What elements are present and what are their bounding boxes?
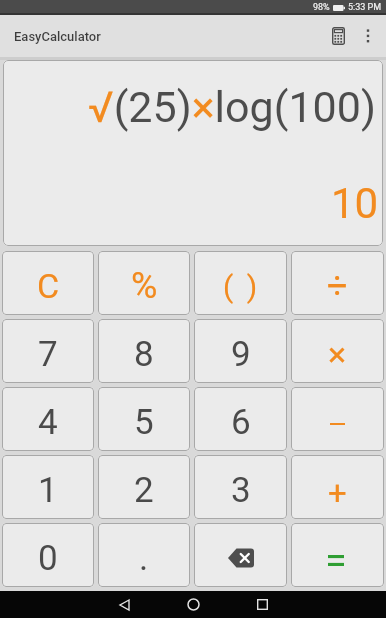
staticText: 3 [231, 470, 251, 511]
button[interactable] [291, 387, 384, 451]
button[interactable] [256, 598, 269, 611]
staticText: √(25)×log(100) [88, 82, 376, 132]
button[interactable]: 3 [194, 455, 287, 519]
button[interactable]: . [98, 523, 190, 587]
button[interactable] [326, 15, 350, 57]
button[interactable]: ( ) [194, 251, 287, 315]
staticText: 5 [134, 402, 154, 443]
staticText: ( ) [223, 269, 258, 304]
staticText: 4 [38, 402, 58, 443]
button[interactable]: 9 [194, 319, 287, 383]
button[interactable]: × [291, 319, 384, 383]
staticText: 7 [38, 334, 58, 375]
button[interactable]: 2 [98, 455, 190, 519]
staticText: 1 [38, 470, 58, 511]
button[interactable]: 4 [2, 387, 94, 451]
button[interactable]: 5 [98, 387, 190, 451]
staticText: 10 [331, 179, 379, 228]
staticText: % [131, 265, 158, 307]
staticText: EasyCalculator [14, 29, 101, 44]
staticText: 8 [134, 334, 154, 375]
staticText: 5:33 PM [348, 2, 382, 13]
button[interactable]: % [98, 251, 190, 315]
staticText: 0 [38, 538, 58, 579]
button[interactable] [350, 15, 386, 57]
button[interactable]: C [2, 251, 94, 315]
staticText: × [328, 334, 347, 374]
staticText: 2 [134, 470, 154, 511]
button[interactable]: 7 [2, 319, 94, 383]
button[interactable]: 8 [98, 319, 190, 383]
staticText: ÷ [327, 265, 348, 307]
button[interactable]: 1 [2, 455, 94, 519]
button[interactable] [187, 598, 200, 611]
button[interactable] [194, 523, 287, 587]
button[interactable]: 0 [2, 523, 94, 587]
button[interactable]: ÷ [291, 251, 384, 315]
staticText: 9 [231, 334, 251, 375]
staticText: . [139, 538, 149, 579]
staticText: 98% [313, 2, 330, 13]
button[interactable]: 6 [194, 387, 287, 451]
staticText: 6 [231, 402, 251, 443]
button[interactable] [291, 523, 384, 587]
button[interactable]: + [291, 455, 384, 519]
staticText: C [37, 266, 60, 306]
button[interactable] [118, 598, 131, 611]
staticText: + [328, 473, 347, 512]
